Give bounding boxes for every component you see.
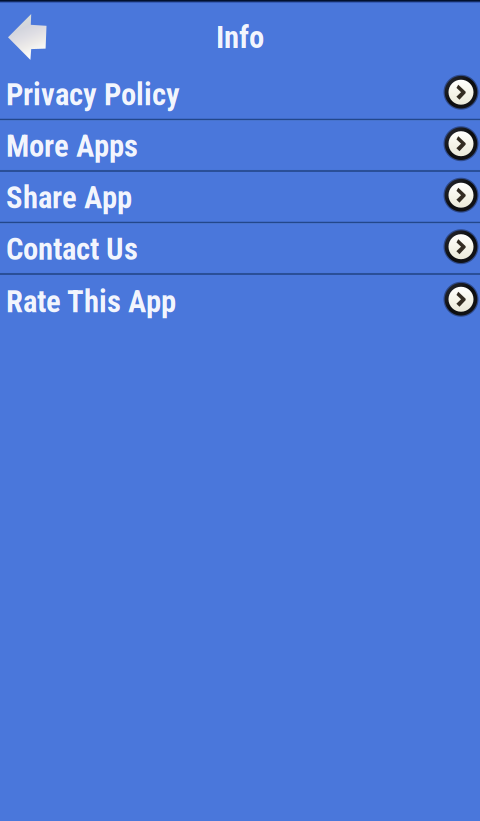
button[interactable]: Privacy Policy bbox=[0, 69, 480, 120]
button[interactable]: Back bbox=[0, 2, 47, 70]
staticText: Share App bbox=[6, 180, 132, 216]
staticText: Contact Us bbox=[6, 231, 138, 267]
button[interactable]: Share App bbox=[0, 172, 480, 223]
button[interactable]: Contact Us bbox=[0, 223, 480, 275]
staticText: Privacy Policy bbox=[6, 77, 180, 113]
button[interactable]: More Apps bbox=[0, 120, 480, 172]
staticText: Rate This App bbox=[6, 284, 176, 320]
staticText: Info bbox=[216, 19, 264, 55]
button[interactable]: Rate This App bbox=[0, 275, 480, 326]
staticText: More Apps bbox=[6, 128, 138, 164]
